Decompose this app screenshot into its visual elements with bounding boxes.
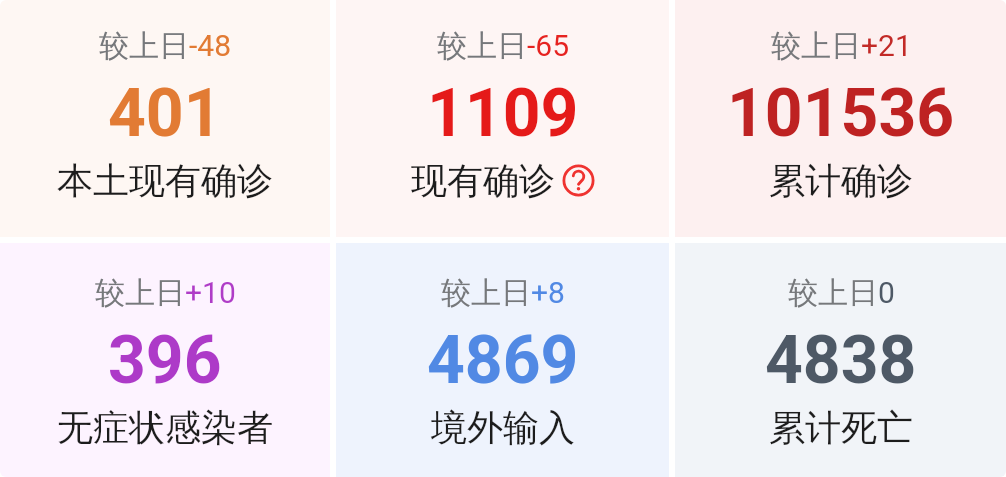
staticText: 境外输入 bbox=[431, 405, 575, 450]
button[interactable]: 较上日-48 bbox=[0, 0, 330, 237]
staticText: 较上日-48 bbox=[99, 27, 232, 65]
staticText: 401 bbox=[108, 75, 222, 152]
button[interactable]: 较上日0 bbox=[675, 243, 1006, 477]
staticText: 累计确诊 bbox=[769, 158, 913, 203]
staticText: 本土现有确诊 bbox=[57, 158, 273, 203]
staticText: 1109 bbox=[427, 75, 579, 152]
staticText: 较上日-65 bbox=[437, 27, 570, 65]
staticText: 现有确诊 bbox=[411, 158, 555, 203]
staticText: 101536 bbox=[727, 75, 955, 152]
staticText: 396 bbox=[108, 322, 222, 399]
staticText: 较上日+21 bbox=[771, 27, 912, 65]
staticText: 较上日+8 bbox=[441, 274, 565, 312]
button[interactable]: 较上日+8 bbox=[336, 243, 669, 477]
staticText: 较上日0 bbox=[788, 274, 895, 312]
button[interactable]: 较上日+10 bbox=[0, 243, 330, 477]
button[interactable]: 现有确诊说明 bbox=[562, 164, 595, 197]
staticText: 较上日+10 bbox=[95, 274, 236, 312]
staticText: 4838 bbox=[765, 322, 917, 399]
button[interactable]: 较上日-65 bbox=[336, 0, 669, 237]
staticText: 无症状感染者 bbox=[57, 405, 273, 450]
staticText: 4869 bbox=[427, 322, 579, 399]
staticText: 累计死亡 bbox=[769, 405, 913, 450]
button[interactable]: 较上日+21 bbox=[675, 0, 1006, 237]
